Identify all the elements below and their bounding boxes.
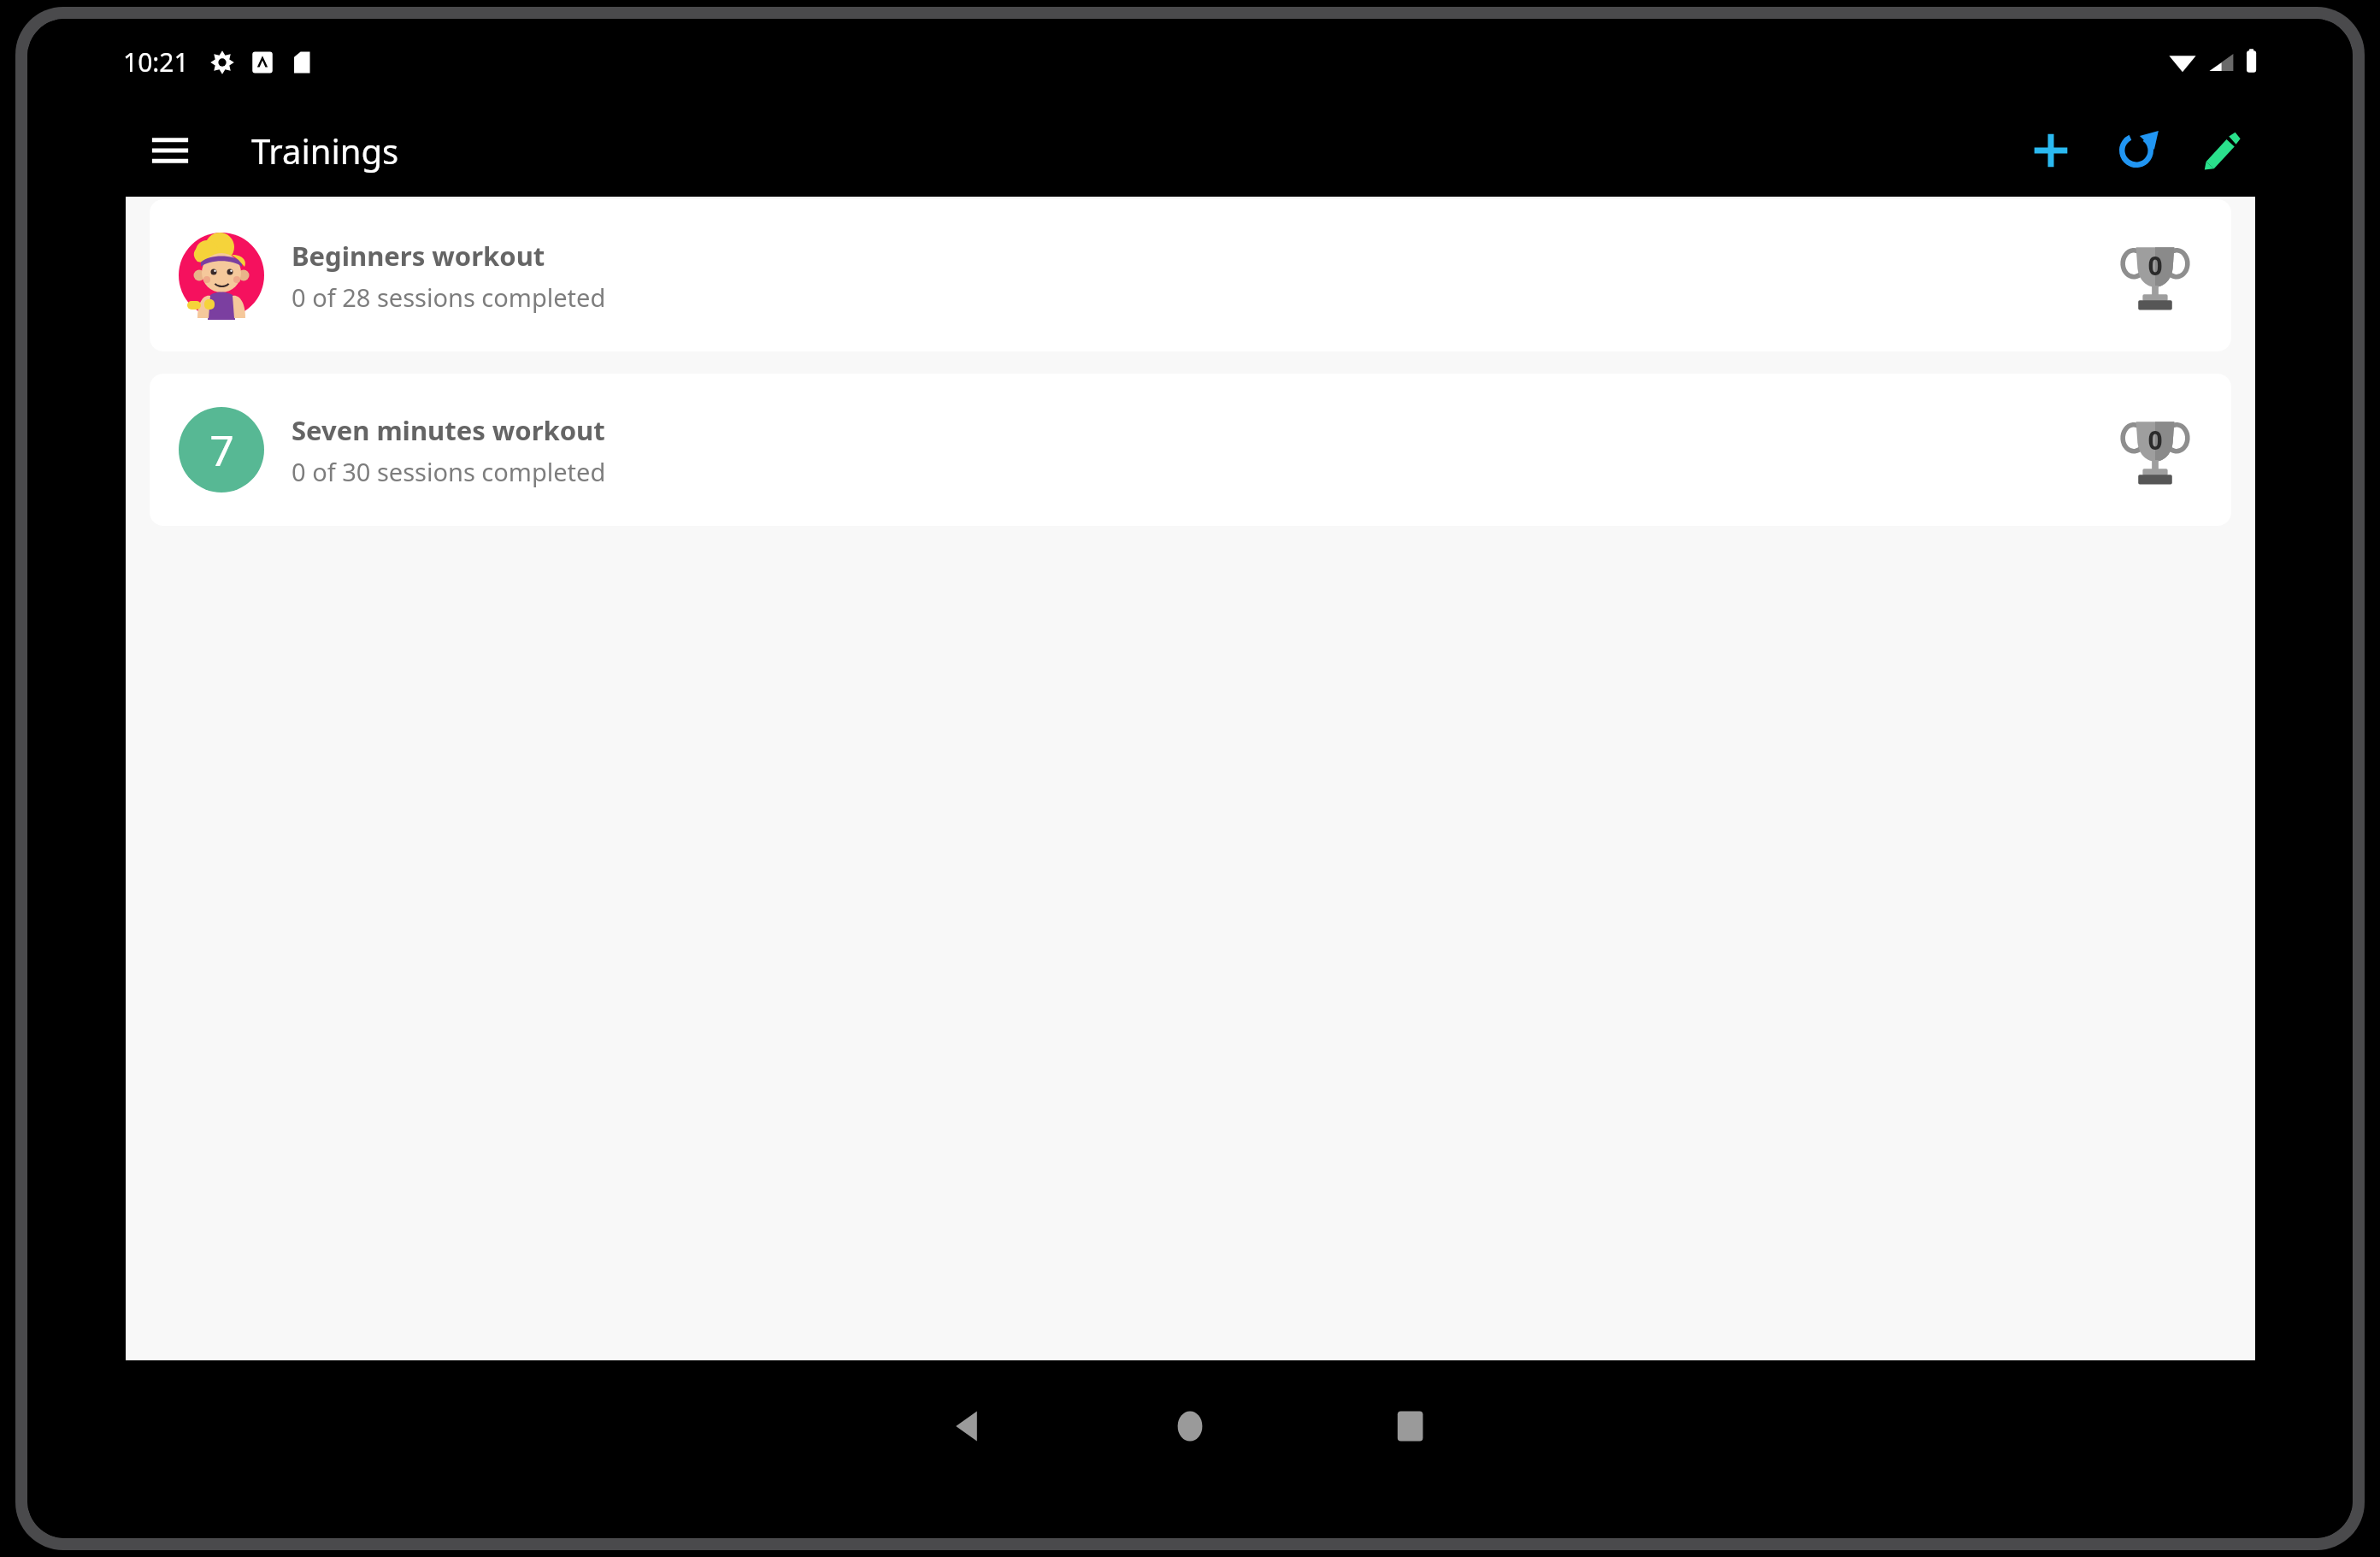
button[interactable]: Edit: [2183, 112, 2260, 189]
staticText: 0 of 30 sessions completed: [292, 455, 606, 488]
button[interactable]: Add training: [2012, 112, 2089, 189]
button[interactable]: 7: [150, 374, 2231, 526]
other: Trophy: 0 achievements: [2118, 413, 2192, 487]
other: Trophy: 0 achievements: [2118, 239, 2192, 312]
staticText: Trainings: [251, 127, 399, 174]
staticText: 0: [2147, 422, 2163, 457]
staticText: Beginners workout: [292, 238, 545, 274]
button[interactable]: Beginners workout: [150, 199, 2231, 351]
button[interactable]: Refresh: [2098, 112, 2175, 189]
button[interactable]: Recent apps: [1364, 1379, 1458, 1473]
staticText: 7: [209, 421, 234, 479]
button[interactable]: Back: [922, 1379, 1016, 1473]
staticText: Seven minutes workout: [292, 412, 605, 448]
button[interactable]: Home: [1143, 1379, 1237, 1473]
staticText: 0: [2147, 248, 2163, 283]
button[interactable]: Open navigation menu: [137, 117, 203, 184]
staticText: 0 of 28 sessions completed: [292, 280, 606, 314]
staticText: 10:21: [123, 44, 189, 80]
